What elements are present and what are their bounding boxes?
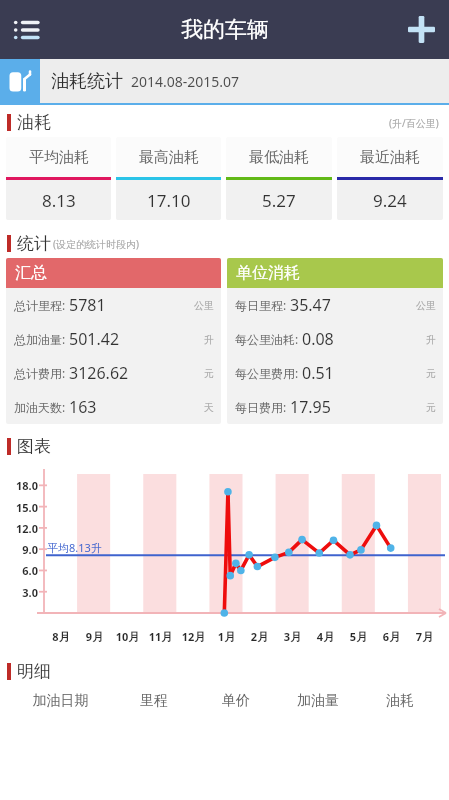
staticText: 汇总 xyxy=(15,263,47,283)
staticText: 11月 xyxy=(144,629,177,644)
staticText: 5.27 xyxy=(262,189,296,212)
staticText: 统计 xyxy=(17,233,51,254)
staticText: 明细 xyxy=(17,661,51,682)
staticText: 3.0 xyxy=(0,585,38,600)
staticText: 每日费用: xyxy=(235,399,287,415)
staticText: 平均8.13升 xyxy=(47,540,102,555)
staticText: 加油天数: xyxy=(14,399,66,415)
staticText: 元 xyxy=(204,367,214,380)
staticText: 17.95 xyxy=(290,396,331,418)
staticText: 公里 xyxy=(194,299,214,312)
staticText: 每公里费用: xyxy=(235,365,299,381)
staticText: 加油量 xyxy=(277,692,359,710)
staticText: 我的车辆 xyxy=(181,16,269,44)
staticText: 图表 xyxy=(17,436,51,457)
button[interactable]: 单位消耗 xyxy=(227,258,443,424)
staticText: 6月 xyxy=(375,629,408,644)
button[interactable]: Menu xyxy=(0,0,56,59)
staticText: 最近油耗 xyxy=(360,148,420,167)
staticText: 7月 xyxy=(408,629,441,644)
staticText: 5781 xyxy=(69,294,106,316)
staticText: 501.42 xyxy=(69,328,120,350)
staticText: 每公里油耗: xyxy=(235,331,299,347)
staticText: 升 xyxy=(204,333,214,346)
staticText: 10月 xyxy=(111,629,144,644)
staticText: 油耗 xyxy=(359,692,441,710)
staticText: 总加油量: xyxy=(14,331,66,347)
staticText: 最高油耗 xyxy=(139,148,199,167)
staticText: 油耗统计 xyxy=(51,70,123,93)
staticText: 8月 xyxy=(44,629,78,644)
staticText: 里程 xyxy=(113,692,195,710)
staticText: 2014.08-2015.07 xyxy=(131,72,240,91)
staticText: 每日里程: xyxy=(235,297,287,313)
staticText: 油耗 xyxy=(17,112,51,133)
staticText: 1月 xyxy=(210,629,243,644)
staticText: 4月 xyxy=(309,629,342,644)
staticText: 平均油耗 xyxy=(29,148,89,167)
button[interactable]: 最低油耗 xyxy=(226,137,332,220)
button[interactable]: 最近油耗 xyxy=(337,137,443,220)
staticText: 15.0 xyxy=(0,500,38,515)
staticText: 3126.62 xyxy=(69,362,129,384)
staticText: 天 xyxy=(204,401,214,414)
staticText: 8.13 xyxy=(42,189,76,212)
staticText: 18.0 xyxy=(0,478,38,493)
staticText: 6.0 xyxy=(0,563,38,578)
staticText: 总计费用: xyxy=(14,365,66,381)
staticText: 元 xyxy=(426,401,436,414)
staticText: 35.47 xyxy=(290,294,331,316)
staticText: 单位消耗 xyxy=(236,263,300,283)
staticText: 3月 xyxy=(276,629,309,644)
staticText: 9月 xyxy=(78,629,111,644)
staticText: 5月 xyxy=(342,629,375,644)
staticText: 163 xyxy=(69,396,97,418)
staticText: 2月 xyxy=(243,629,276,644)
button[interactable]: 平均油耗 xyxy=(6,137,111,220)
staticText: 升 xyxy=(426,333,436,346)
staticText: (设定的统计时段内) xyxy=(53,237,139,251)
staticText: 单价 xyxy=(195,692,277,710)
staticText: 9.24 xyxy=(373,189,407,212)
staticText: 元 xyxy=(426,367,436,380)
staticText: 17.10 xyxy=(147,189,191,212)
staticText: 总计里程: xyxy=(14,297,66,313)
staticText: 9.0 xyxy=(0,542,38,557)
staticText: 最低油耗 xyxy=(249,148,309,167)
staticText: 0.08 xyxy=(302,328,334,350)
staticText: 12.0 xyxy=(0,521,38,536)
button[interactable]: Add vehicle xyxy=(393,0,449,59)
button[interactable]: 油耗统计 xyxy=(0,59,449,103)
button[interactable]: 汇总 xyxy=(6,258,221,424)
staticText: (升/百公里) xyxy=(389,116,439,130)
staticText: 公里 xyxy=(416,299,436,312)
staticText: 加油日期 xyxy=(8,692,113,710)
button[interactable]: 最高油耗 xyxy=(116,137,221,220)
staticText: 0.51 xyxy=(302,362,334,384)
staticText: 12月 xyxy=(177,629,210,644)
